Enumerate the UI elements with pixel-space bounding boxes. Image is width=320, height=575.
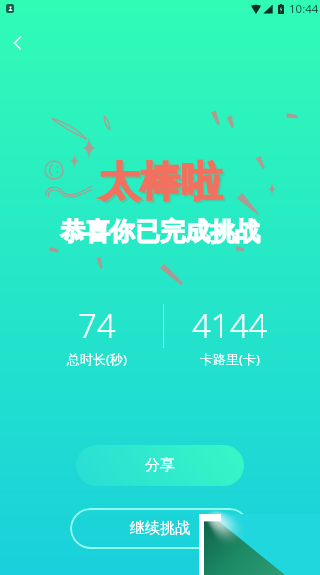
staticText: 74 (78, 303, 116, 348)
staticText: 太棒啦 (101, 159, 224, 211)
staticText: 10:44 (289, 1, 319, 17)
staticText: 继续挑战 (130, 519, 190, 538)
staticText: 分享 (145, 456, 175, 475)
button[interactable]: Back (2, 27, 34, 59)
staticText: 总时长(秒) (67, 350, 127, 368)
staticText: 恭喜你已完成挑战 (60, 216, 260, 247)
button[interactable]: 继续挑战 (70, 508, 250, 549)
staticText: 4144 (192, 303, 268, 348)
staticText: 太棒啦 (99, 157, 222, 209)
button[interactable]: 分享 (76, 445, 244, 486)
staticText: 卡路里(卡) (200, 350, 260, 368)
